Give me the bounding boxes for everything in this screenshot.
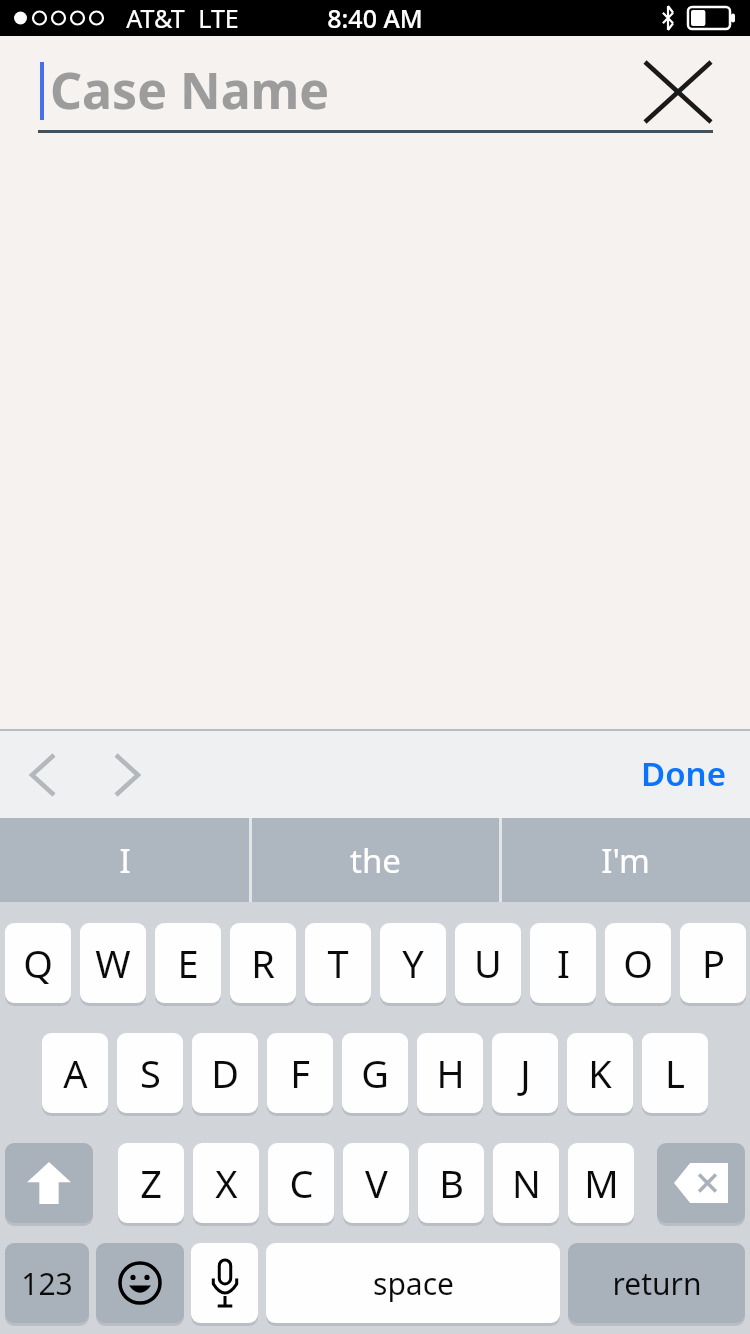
staticText: M: [584, 1157, 619, 1209]
button[interactable]: U: [455, 923, 521, 1003]
button[interactable]: H: [417, 1033, 483, 1113]
button[interactable]: the: [250, 818, 500, 902]
staticText: Case Name: [50, 56, 330, 124]
staticText: N: [512, 1157, 541, 1209]
button[interactable]: X: [193, 1143, 259, 1223]
button[interactable]: P: [680, 923, 746, 1003]
button[interactable]: K: [567, 1033, 633, 1113]
button[interactable]: A: [42, 1033, 108, 1113]
staticText: W: [95, 937, 131, 989]
staticText: G: [361, 1047, 389, 1099]
button[interactable]: Previous field: [10, 747, 76, 803]
button[interactable]: F: [267, 1033, 333, 1113]
button[interactable]: Case Name: [38, 56, 638, 126]
button[interactable]: Shift: [5, 1143, 93, 1223]
button[interactable]: R: [230, 923, 296, 1003]
staticText: X: [215, 1157, 238, 1209]
button[interactable]: Z: [118, 1143, 184, 1223]
button[interactable]: V: [343, 1143, 409, 1223]
button[interactable]: E: [155, 923, 221, 1003]
button[interactable]: T: [305, 923, 371, 1003]
button[interactable]: space: [266, 1243, 560, 1323]
staticText: B: [439, 1157, 464, 1209]
staticText: V: [365, 1157, 388, 1209]
button[interactable]: C: [268, 1143, 334, 1223]
staticText: E: [177, 937, 199, 989]
button[interactable]: J: [492, 1033, 558, 1113]
button[interactable]: I: [530, 923, 596, 1003]
staticText: AT&T: [126, 1, 185, 35]
staticText: R: [251, 937, 275, 989]
staticText: 123: [21, 1263, 73, 1304]
button[interactable]: Clear text: [636, 50, 720, 134]
button[interactable]: S: [117, 1033, 183, 1113]
staticText: H: [436, 1047, 465, 1099]
staticText: Q: [23, 937, 53, 989]
staticText: J: [520, 1047, 531, 1099]
staticText: the: [350, 838, 401, 883]
button[interactable]: M: [568, 1143, 634, 1223]
staticText: U: [474, 937, 502, 989]
button[interactable]: B: [418, 1143, 484, 1223]
button[interactable]: Emoji: [96, 1243, 184, 1323]
button[interactable]: Next field: [94, 747, 160, 803]
staticText: I: [119, 838, 131, 883]
button[interactable]: W: [80, 923, 146, 1003]
staticText: Done: [641, 751, 726, 796]
staticText: LTE: [198, 1, 239, 35]
button[interactable]: Q: [5, 923, 71, 1003]
staticText: space: [373, 1263, 454, 1304]
staticText: L: [665, 1047, 685, 1099]
staticText: Y: [402, 937, 424, 989]
staticText: S: [140, 1047, 161, 1099]
staticText: I: [557, 937, 570, 989]
staticText: O: [623, 937, 653, 989]
staticText: Z: [140, 1157, 162, 1209]
button[interactable]: 123: [5, 1243, 89, 1323]
button[interactable]: Done: [633, 741, 734, 806]
staticText: return: [612, 1263, 702, 1304]
button[interactable]: O: [605, 923, 671, 1003]
staticText: C: [289, 1157, 314, 1209]
button[interactable]: D: [192, 1033, 258, 1113]
button[interactable]: G: [342, 1033, 408, 1113]
button[interactable]: L: [642, 1033, 708, 1113]
button[interactable]: Dictate: [191, 1243, 258, 1323]
staticText: F: [290, 1047, 310, 1099]
staticText: I'm: [601, 838, 650, 883]
button[interactable]: I: [0, 818, 250, 902]
staticText: D: [211, 1047, 239, 1099]
staticText: 8:40 AM: [327, 1, 423, 35]
button[interactable]: N: [493, 1143, 559, 1223]
button[interactable]: Backspace: [657, 1143, 745, 1223]
button[interactable]: Y: [380, 923, 446, 1003]
staticText: K: [588, 1047, 612, 1099]
button[interactable]: return: [568, 1243, 745, 1323]
button[interactable]: I'm: [500, 818, 750, 902]
staticText: P: [702, 937, 725, 989]
staticText: A: [63, 1047, 88, 1099]
staticText: T: [327, 937, 349, 989]
